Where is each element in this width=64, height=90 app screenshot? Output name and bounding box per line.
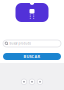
button[interactable]: Sign in with Google	[21, 79, 27, 84]
staticText: Buscar producto	[9, 42, 31, 45]
button[interactable]: Sign in with Facebook	[29, 79, 35, 84]
staticText: BUSCAR	[23, 54, 40, 59]
button[interactable]: Sign in with Apple	[37, 79, 43, 84]
button[interactable]: Buscar producto	[3, 40, 61, 47]
button[interactable]: BUSCAR	[3, 53, 61, 60]
